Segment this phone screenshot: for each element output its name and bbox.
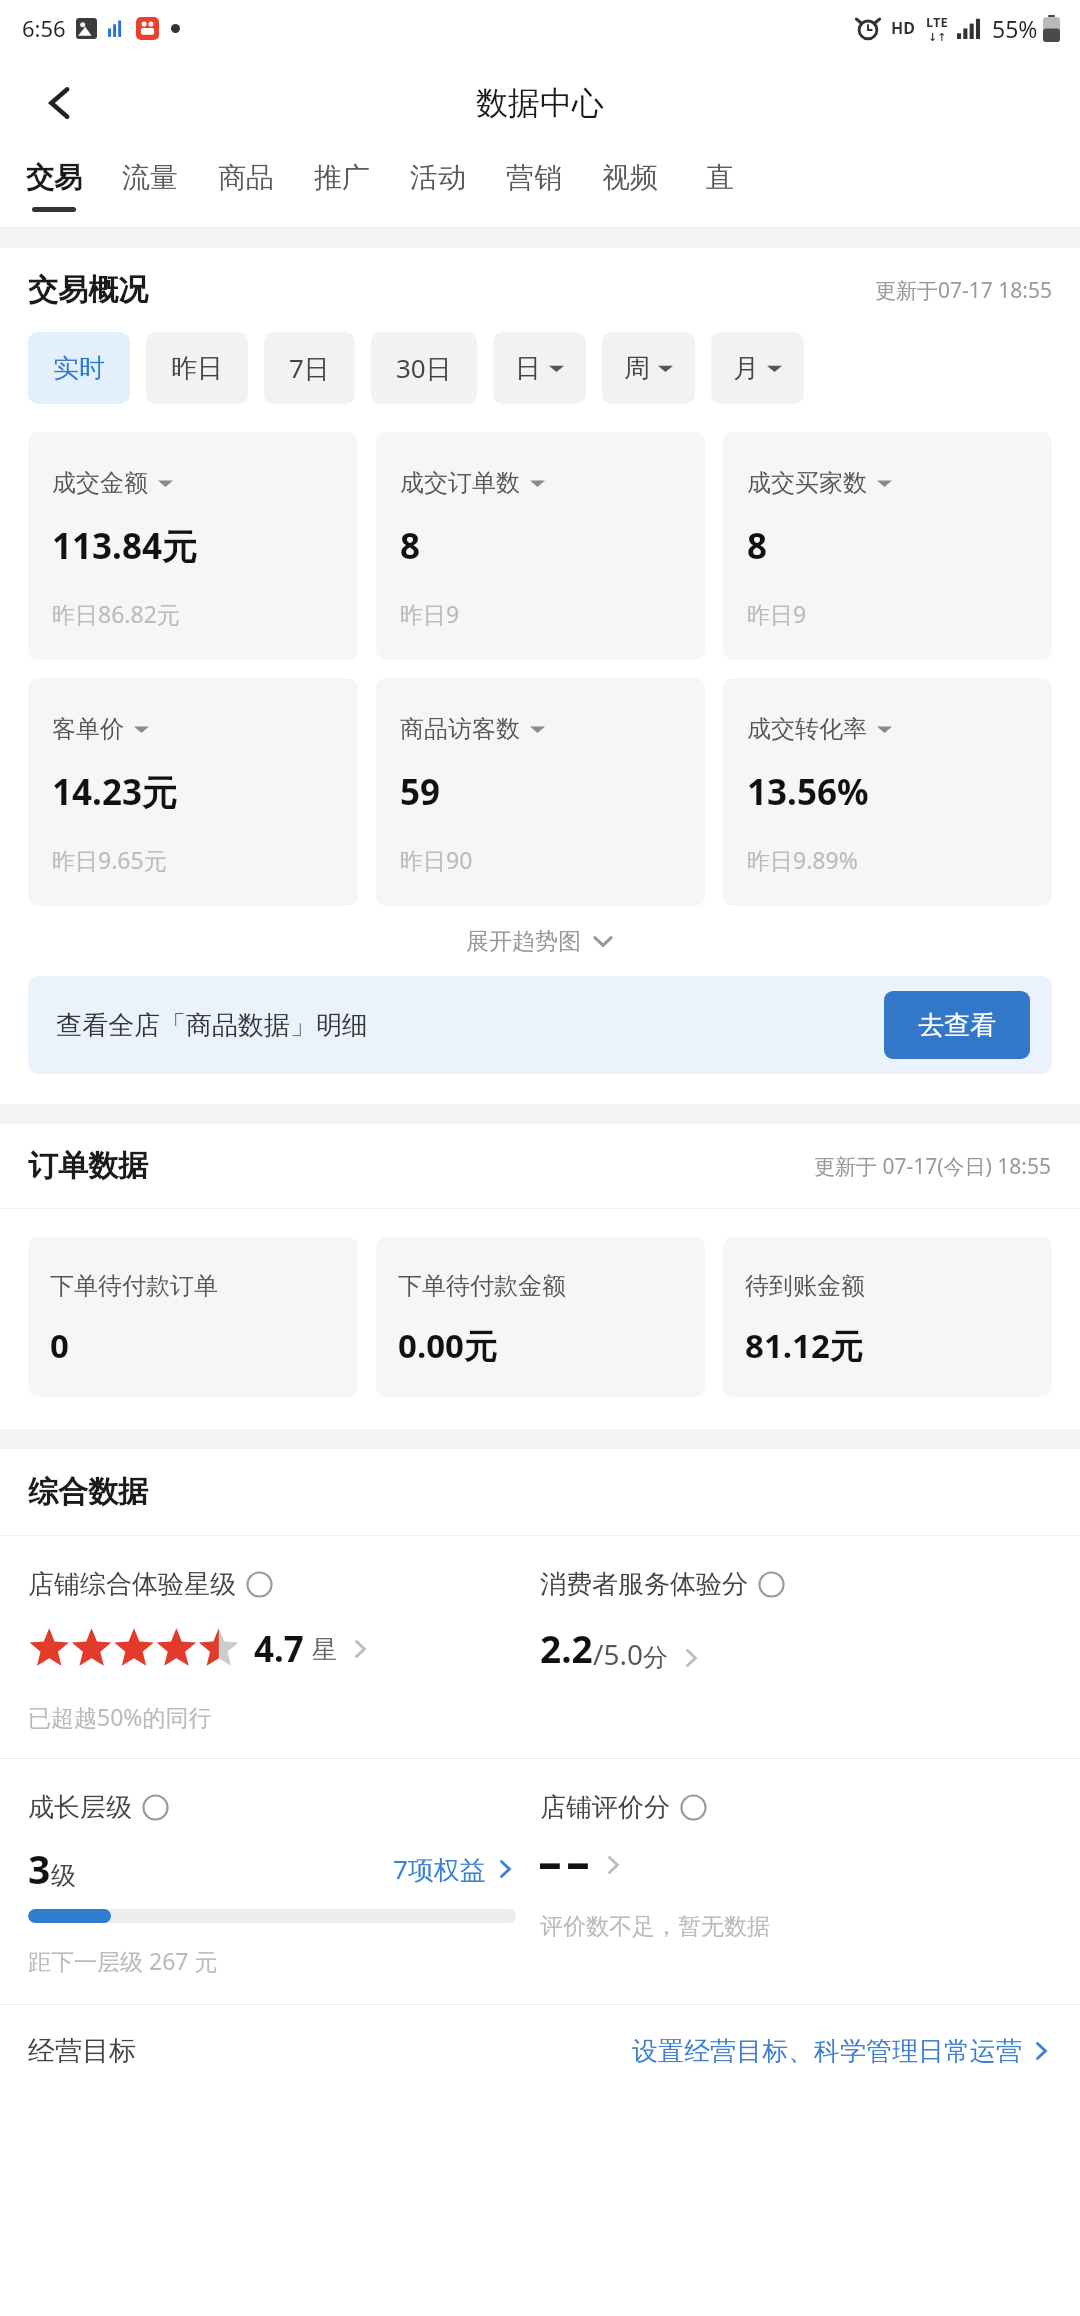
staticText: 下单待付款订单: [50, 1271, 218, 1301]
button[interactable]: 日: [493, 332, 586, 404]
staticText: 月: [733, 352, 759, 385]
staticText: 昨日9: [747, 598, 807, 629]
staticText: 星: [312, 1634, 337, 1665]
staticText: 昨日86.82元: [52, 598, 180, 629]
button[interactable]: 视频: [602, 150, 658, 228]
button[interactable]: 直: [698, 150, 742, 228]
staticText: 分: [643, 1642, 668, 1673]
staticText: 视频: [602, 160, 658, 195]
staticText: 3: [28, 1842, 51, 1895]
staticText: 更新于07-17 18:55: [875, 276, 1052, 305]
button[interactable]: 实时: [28, 332, 130, 404]
staticText: 实时: [53, 352, 105, 385]
staticText: 8: [400, 522, 421, 570]
staticText: 7日: [289, 350, 330, 386]
staticText: 8: [747, 522, 768, 570]
staticText: 经营目标: [28, 2034, 136, 2068]
staticText: 7项权益: [393, 1851, 486, 1887]
staticText: 成交买家数: [747, 468, 867, 498]
button[interactable]: 店铺综合体验星级: [28, 1536, 540, 1758]
staticText: 交易: [26, 160, 82, 195]
staticText: 去查看: [918, 1009, 996, 1042]
button[interactable]: 30日: [371, 332, 477, 404]
staticText: 59: [400, 768, 441, 816]
staticText: 6:56: [22, 13, 66, 43]
staticText: 店铺综合体验星级: [28, 1568, 236, 1601]
staticText: 评价数不足，暂无数据: [540, 1912, 770, 1941]
staticText: 81.12元: [745, 1323, 863, 1368]
button[interactable]: 7日: [264, 332, 355, 404]
staticText: 成长层级: [28, 1791, 132, 1824]
staticText: 查看全店「商品数据」明细: [56, 1009, 368, 1042]
staticText: 综合数据: [28, 1473, 148, 1511]
staticText: 商品: [218, 160, 274, 195]
staticText: 活动: [410, 160, 466, 195]
button[interactable]: 成交买家数: [723, 432, 1052, 660]
button[interactable]: 周: [602, 332, 695, 404]
staticText: 13.56%: [747, 768, 869, 816]
button[interactable]: 下单待付款订单: [28, 1237, 358, 1397]
button[interactable]: 流量: [122, 150, 178, 228]
staticText: 0.00元: [398, 1323, 497, 1368]
staticText: 订单数据: [28, 1147, 148, 1185]
button[interactable]: 展开趋势图: [0, 906, 1080, 976]
button[interactable]: 去查看: [884, 991, 1030, 1059]
staticText: 营销: [506, 160, 562, 195]
button[interactable]: 月: [711, 332, 804, 404]
staticText: 2.2: [540, 1623, 593, 1673]
staticText: 30日: [396, 350, 452, 386]
button[interactable]: 7项权益: [393, 1851, 516, 1887]
button[interactable]: 客单价: [28, 678, 358, 906]
staticText: HD: [891, 17, 915, 39]
staticText: LTE: [926, 13, 948, 31]
staticText: 展开趋势图: [466, 927, 581, 956]
staticText: 已超越50%的同行: [28, 1701, 212, 1732]
staticText: 店铺评价分: [540, 1791, 670, 1824]
staticText: 下单待付款金额: [398, 1271, 566, 1301]
button[interactable]: 消费者服务体验分: [540, 1536, 1052, 1673]
button[interactable]: 成交金额: [28, 432, 358, 660]
button[interactable]: 活动: [410, 150, 466, 228]
staticText: 55%: [992, 13, 1038, 44]
button[interactable]: 待到账金额: [723, 1237, 1052, 1397]
staticText: 4.7: [254, 1625, 304, 1673]
staticText: 客单价: [52, 714, 124, 744]
staticText: 消费者服务体验分: [540, 1568, 748, 1601]
button[interactable]: 昨日: [146, 332, 248, 404]
button[interactable]: 商品访客数: [376, 678, 705, 906]
button[interactable]: 经营目标: [28, 2005, 1052, 2097]
staticText: 设置经营目标、科学管理日常运营: [632, 2035, 1022, 2068]
button[interactable]: 成交订单数: [376, 432, 705, 660]
staticText: 推广: [314, 160, 370, 195]
button[interactable]: 查看全店「商品数据」明细: [28, 976, 1052, 1074]
staticText: 成交金额: [52, 468, 148, 498]
staticText: 级: [51, 1860, 76, 1891]
staticText: 距下一层级 267 元: [28, 1945, 218, 1976]
button[interactable]: 成交转化率: [723, 678, 1052, 906]
staticText: ↓↑: [928, 31, 947, 44]
staticText: 昨日9.89%: [747, 844, 858, 875]
button[interactable]: 下单待付款金额: [376, 1237, 705, 1397]
button[interactable]: 推广: [314, 150, 370, 228]
staticText: 成交订单数: [400, 468, 520, 498]
staticText: 流量: [122, 160, 178, 195]
staticText: 直: [706, 160, 734, 195]
staticText: 更新于 07-17(今日) 18:55: [814, 1152, 1052, 1181]
button[interactable]: 店铺评价分: [540, 1759, 1052, 1941]
staticText: 日: [515, 352, 541, 385]
button[interactable]: 商品: [218, 150, 274, 228]
staticText: 商品访客数: [400, 714, 520, 744]
staticText: 数据中心: [476, 83, 604, 123]
staticText: 113.84元: [52, 522, 197, 570]
button[interactable]: 交易: [26, 150, 82, 228]
staticText: 交易概况: [28, 271, 148, 309]
staticText: 14.23元: [52, 768, 177, 816]
staticText: 0: [50, 1323, 69, 1368]
staticText: 待到账金额: [745, 1271, 865, 1301]
staticText: 昨日9.65元: [52, 844, 167, 875]
button[interactable]: Back: [26, 69, 94, 137]
staticText: 昨日9: [400, 598, 460, 629]
button[interactable]: 营销: [506, 150, 562, 228]
staticText: /5.0: [593, 1635, 643, 1673]
staticText: 周: [624, 352, 650, 385]
